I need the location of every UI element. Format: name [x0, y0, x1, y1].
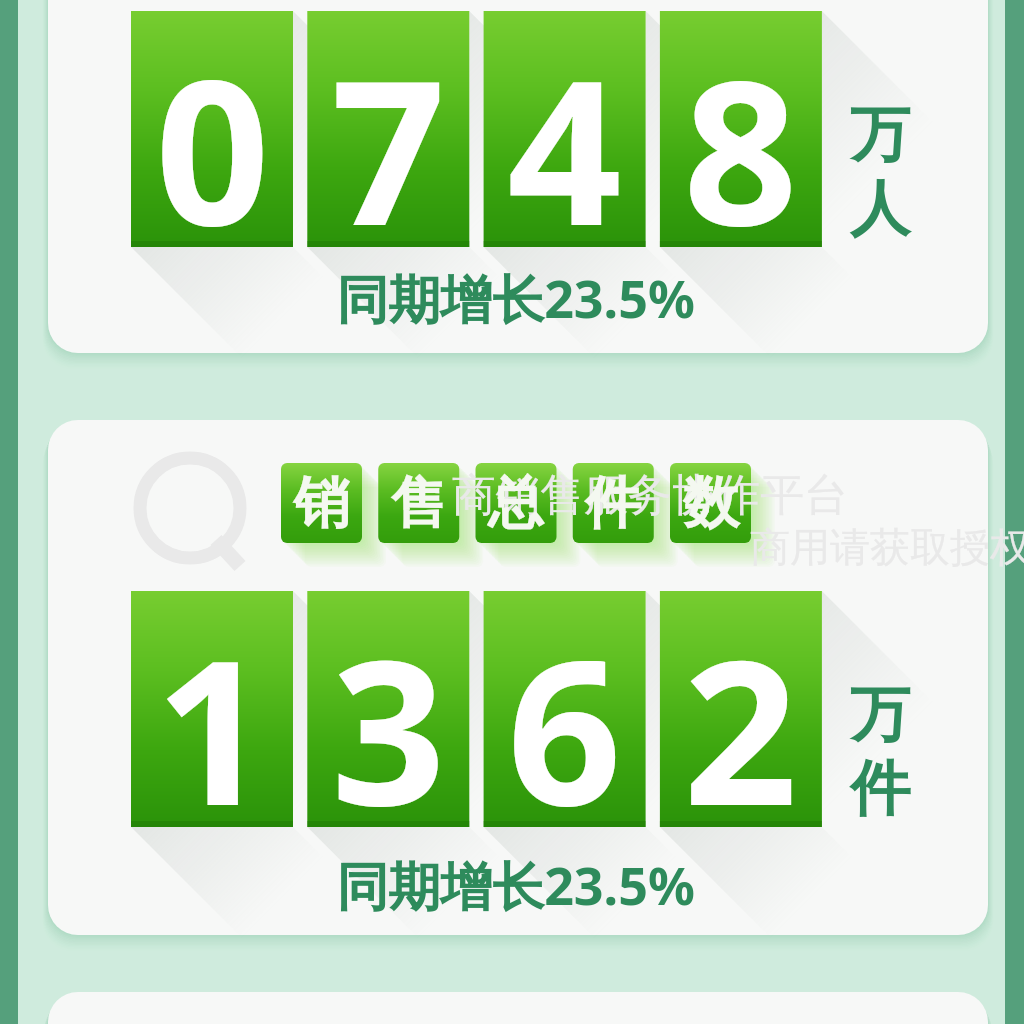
staticText: 3 [331, 591, 446, 827]
staticText: 同期增长23.5% [336, 262, 695, 326]
staticText: 件 [585, 468, 641, 539]
staticText: 总 [488, 468, 544, 539]
button[interactable]: 总 [475, 464, 556, 542]
staticText: 7 [331, 11, 446, 247]
staticText: 人 [850, 171, 910, 247]
staticText: 商用请获取授权 [750, 522, 1024, 572]
staticText: 销 [294, 468, 350, 539]
button[interactable]: 1 [131, 591, 293, 827]
staticText: 4 [507, 11, 622, 247]
button[interactable]: 售 [378, 464, 459, 542]
button[interactable]: 6 [483, 591, 645, 827]
button[interactable]: 件 [572, 464, 653, 542]
staticText: 售 [391, 468, 447, 539]
staticText: 8 [683, 11, 798, 247]
button[interactable]: 4 [483, 11, 645, 247]
button[interactable]: 8 [659, 11, 821, 247]
staticText: 商销售服务协作平台 [452, 468, 848, 522]
staticText: 1 [155, 591, 270, 827]
staticText: 万 [850, 677, 910, 753]
staticText: 同期增长23.5% [336, 849, 695, 913]
button[interactable]: 2 [659, 591, 821, 827]
staticText: 万 [850, 97, 910, 173]
button[interactable]: 0 [131, 11, 293, 247]
staticText: 2 [683, 591, 798, 827]
button[interactable]: 数 [670, 464, 751, 542]
button[interactable]: 销 [281, 464, 362, 542]
button[interactable]: 7 [307, 11, 469, 247]
staticText: 6 [507, 591, 622, 827]
staticText: 件 [850, 751, 910, 827]
staticText: 0 [155, 11, 270, 247]
button[interactable]: 3 [307, 591, 469, 827]
staticText: 数 [683, 468, 739, 539]
